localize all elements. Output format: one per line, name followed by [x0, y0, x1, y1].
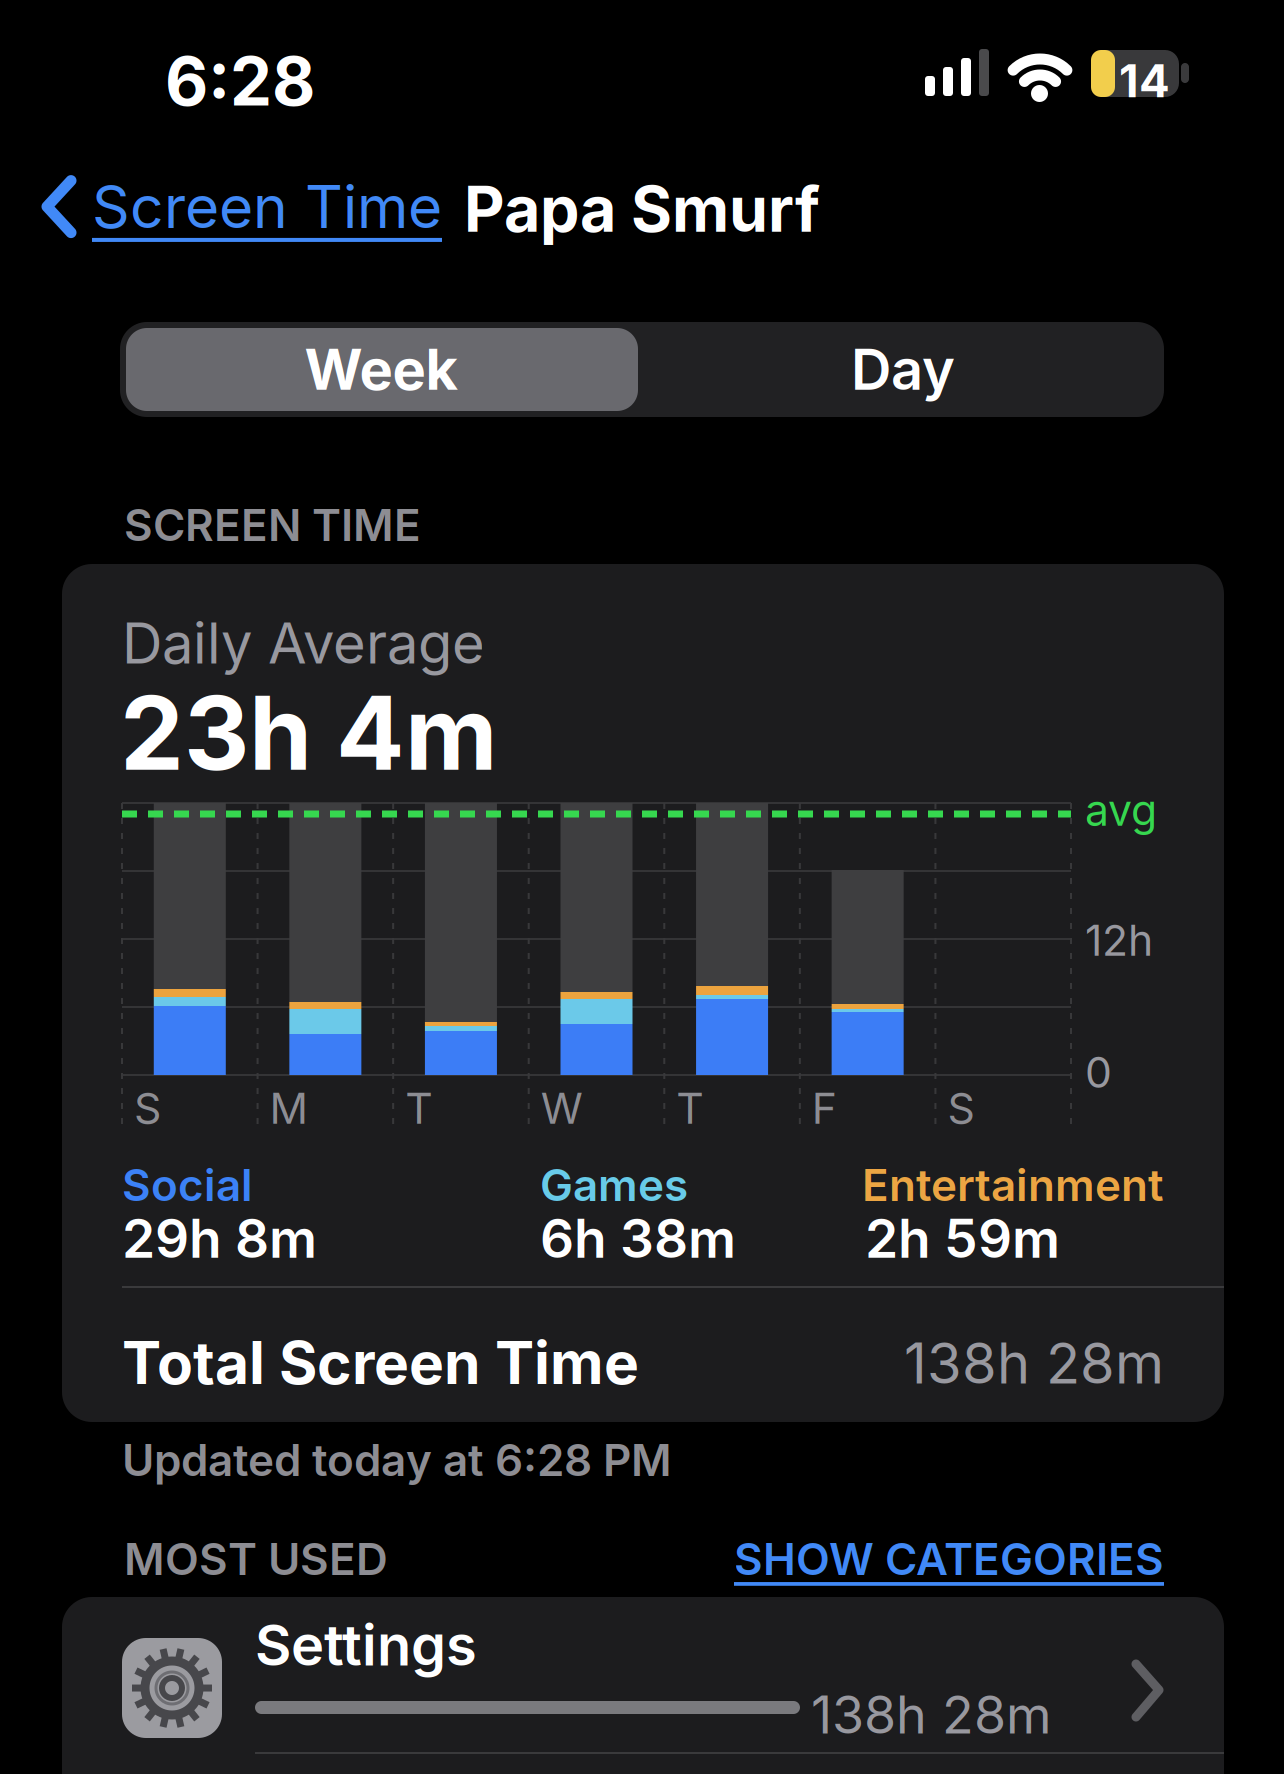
staticText: T	[405, 1083, 433, 1133]
staticText: S	[947, 1083, 974, 1133]
staticText: S	[134, 1083, 161, 1133]
staticText: Social	[122, 1159, 253, 1211]
staticText: Screen Time	[92, 172, 442, 241]
staticText: Total Screen Time	[122, 1328, 639, 1397]
staticText: 0	[1085, 1047, 1112, 1097]
staticText: Updated today at 6:28 PM	[122, 1434, 672, 1486]
staticText: Day	[851, 336, 955, 403]
staticText: 29h 8m	[122, 1207, 317, 1270]
button[interactable]: SHOW CATEGORIES	[734, 1533, 1164, 1585]
button[interactable]: Screen Time	[42, 172, 442, 241]
staticText: 6:28	[165, 42, 315, 121]
staticText: SHOW CATEGORIES	[734, 1533, 1164, 1585]
staticText: 12h	[1085, 915, 1153, 965]
staticText: 138h 28m	[904, 1330, 1164, 1396]
staticText: T	[676, 1083, 704, 1133]
staticText: F	[812, 1083, 837, 1133]
staticText: Daily Average	[122, 610, 485, 676]
staticText: SCREEN TIME	[124, 499, 421, 551]
staticText: W	[541, 1083, 583, 1133]
staticText: Papa Smurf	[464, 172, 820, 246]
staticText: Settings	[255, 1612, 477, 1678]
button[interactable]: Week	[120, 322, 642, 417]
staticText: 14	[1119, 54, 1170, 107]
staticText: 138h 28m	[811, 1684, 1052, 1745]
staticText: Week	[304, 336, 457, 403]
staticText: 23h 4m	[120, 673, 497, 792]
staticText: 6h 38m	[540, 1207, 736, 1270]
staticText: Games	[540, 1159, 688, 1211]
staticText: 2h 59m	[865, 1207, 1060, 1270]
staticText: Entertainment	[862, 1159, 1164, 1211]
button[interactable]: Day	[642, 322, 1164, 417]
button[interactable]: Settings	[62, 1597, 1224, 1774]
staticText: avg	[1085, 785, 1157, 835]
staticText: M	[270, 1083, 309, 1133]
staticText: MOST USED	[124, 1533, 388, 1585]
